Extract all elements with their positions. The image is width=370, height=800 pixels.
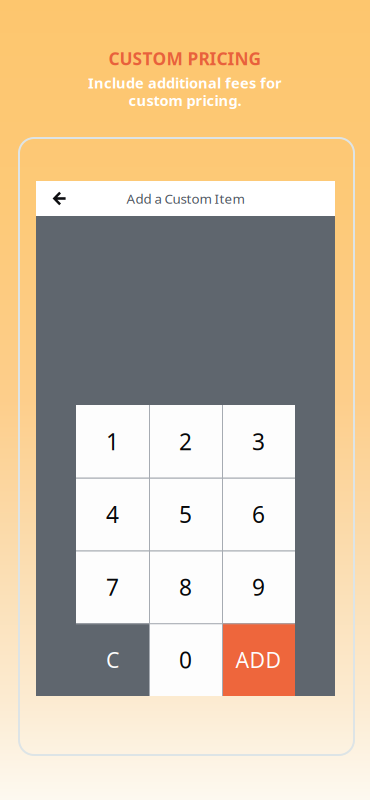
staticText: 7 [106, 572, 119, 602]
staticText: Add a Custom Item [126, 190, 244, 207]
staticText: 2 [179, 426, 192, 456]
staticText: 0 [179, 645, 192, 675]
staticText: 8 [179, 572, 192, 602]
staticText: 6 [252, 499, 265, 529]
staticText: C [106, 645, 119, 674]
staticText: custom pricing. [128, 90, 241, 110]
staticText: Include additional fees for [88, 73, 282, 92]
button[interactable]: C [76, 623, 149, 696]
staticText: 9 [252, 572, 265, 602]
button[interactable]: 2 [149, 405, 222, 478]
button[interactable]: 6 [222, 478, 295, 551]
button[interactable]: 1 [76, 405, 149, 478]
staticText: 3 [252, 426, 265, 456]
staticText: 1 [106, 426, 119, 456]
button[interactable]: 7 [76, 550, 149, 623]
button[interactable]: 8 [149, 550, 222, 623]
button[interactable]: 4 [76, 478, 149, 551]
button[interactable]: Back [36, 182, 78, 215]
button[interactable]: 9 [222, 550, 295, 623]
button[interactable]: ADD [222, 623, 295, 696]
staticText: 4 [106, 499, 119, 529]
button[interactable]: 5 [149, 478, 222, 551]
button[interactable]: 0 [149, 623, 222, 696]
staticText: 5 [179, 499, 192, 529]
button[interactable]: 3 [222, 405, 295, 478]
staticText: ADD [235, 645, 281, 674]
staticText: CUSTOM PRICING [108, 47, 261, 70]
